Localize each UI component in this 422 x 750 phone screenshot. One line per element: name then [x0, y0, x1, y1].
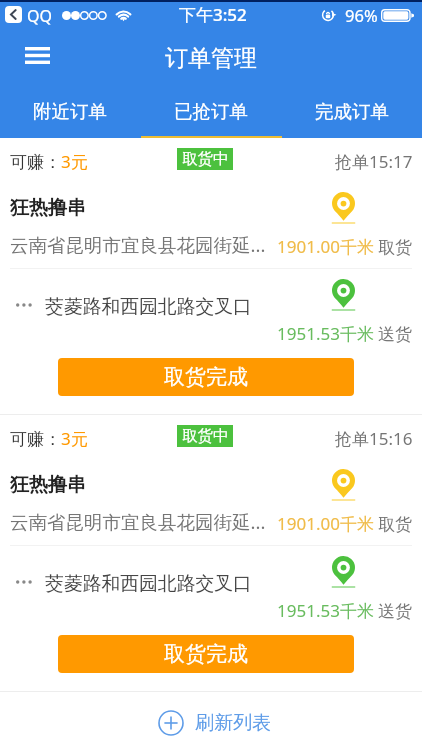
staticText: 云南省昆明市宜良县花园街延... — [10, 509, 266, 534]
staticText: 取货中 — [182, 149, 229, 169]
staticText: 完成订单 — [315, 100, 389, 123]
button[interactable]: 可赚：3元 — [0, 138, 422, 414]
staticText: 1951.53千米 送货 — [277, 322, 413, 345]
staticText: 抢单15:16 — [335, 427, 413, 450]
staticText: 茭菱路和西园北路交叉口 — [45, 295, 252, 319]
button[interactable]: Back — [5, 6, 22, 23]
staticText: 订单管理 — [165, 44, 257, 73]
staticText: 云南省昆明市宜良县花园街延... — [10, 232, 266, 257]
button[interactable]: 取货完成 — [58, 635, 354, 673]
staticText: 可赚：3元 — [10, 150, 88, 173]
button[interactable]: 取货完成 — [58, 358, 354, 396]
staticText: 下午3:52 — [179, 3, 247, 26]
button[interactable]: 附近订单 — [0, 85, 140, 138]
staticText: 茭菱路和西园北路交叉口 — [45, 572, 252, 596]
staticText: 1901.00千米 取货 — [277, 512, 413, 535]
staticText: 刷新列表 — [195, 711, 271, 735]
staticText: 取货完成 — [164, 364, 248, 390]
staticText: 狂热撸串 — [10, 473, 86, 497]
staticText: 狂热撸串 — [10, 196, 86, 220]
staticText: 已抢订单 — [174, 100, 248, 123]
staticText: 取货中 — [182, 426, 229, 446]
button[interactable]: Menu — [15, 38, 59, 72]
staticText: 附近订单 — [33, 100, 107, 123]
staticText: 可赚：3元 — [10, 427, 88, 450]
staticText: 96% — [345, 4, 378, 26]
button[interactable]: 可赚：3元 — [0, 415, 422, 691]
button[interactable]: 刷新列表 — [0, 692, 422, 750]
button[interactable]: 已抢订单 — [140, 85, 281, 138]
staticText: 取货完成 — [164, 641, 248, 667]
staticText: 1951.53千米 送货 — [277, 599, 413, 622]
staticText: 1901.00千米 取货 — [277, 235, 413, 258]
staticText: QQ — [27, 5, 52, 27]
button[interactable]: 完成订单 — [281, 85, 422, 138]
staticText: 抢单15:17 — [335, 150, 413, 173]
